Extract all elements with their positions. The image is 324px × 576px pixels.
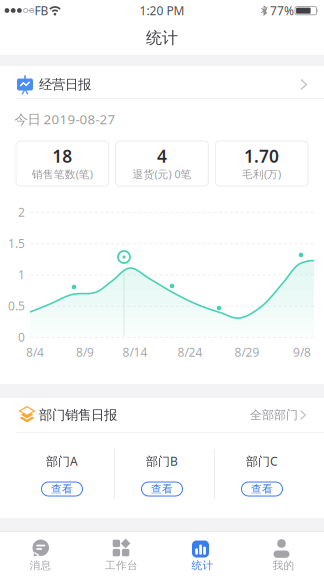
staticText: 4 <box>157 144 167 167</box>
staticText: 部门B <box>146 453 178 469</box>
staticText: 0.5 <box>8 298 25 314</box>
staticText: 1:20 PM <box>139 2 184 18</box>
button[interactable]: 统计 <box>162 531 243 576</box>
staticText: 1.70 <box>244 144 279 167</box>
staticText: 8/14 <box>122 344 147 360</box>
staticText: 部门销售日报 <box>39 407 117 423</box>
staticText: 0 <box>18 329 25 345</box>
staticText: 查看 <box>251 482 273 495</box>
staticText: 部门A <box>46 453 78 469</box>
staticText: 今日 2019-08-27 <box>14 110 115 128</box>
staticText: 部门C <box>246 453 278 469</box>
staticText: 经营日报 <box>39 76 91 93</box>
button[interactable]: 查看 <box>241 481 283 496</box>
staticText: 查看 <box>51 482 73 495</box>
staticText: 2 <box>18 204 25 220</box>
staticText: 我的 <box>272 559 294 572</box>
button[interactable]: 查看 <box>141 481 183 496</box>
staticText: 77% <box>270 3 294 18</box>
staticText: 退货(元) 0笔 <box>132 167 191 181</box>
button[interactable]: 查看 <box>41 481 83 496</box>
staticText: 8/4 <box>26 344 44 360</box>
staticText: 统计 <box>146 28 178 48</box>
staticText: 9/8 <box>293 344 311 360</box>
staticText: 8/29 <box>234 344 259 360</box>
staticText: 工作台 <box>105 559 138 572</box>
button[interactable]: 部门销售日报 <box>0 398 324 432</box>
staticText: 1 <box>18 266 25 282</box>
staticText: 销售笔数(笔) <box>32 167 93 181</box>
staticText: 毛利(万) <box>242 167 281 181</box>
button[interactable]: 我的 <box>243 531 324 576</box>
staticText: 8/24 <box>177 344 202 360</box>
button[interactable]: 消息 <box>0 531 81 576</box>
staticText: 1.5 <box>8 235 25 251</box>
button[interactable]: 经营日报 <box>0 66 324 98</box>
staticText: FB <box>34 3 48 18</box>
button[interactable]: 工作台 <box>81 531 162 576</box>
staticText: 查看 <box>151 482 173 495</box>
staticText: 8/9 <box>76 344 94 360</box>
staticText: 统计 <box>191 559 213 572</box>
staticText: 18 <box>52 144 72 167</box>
staticText: 消息 <box>29 559 51 572</box>
staticText: 全部部门 <box>250 408 298 422</box>
